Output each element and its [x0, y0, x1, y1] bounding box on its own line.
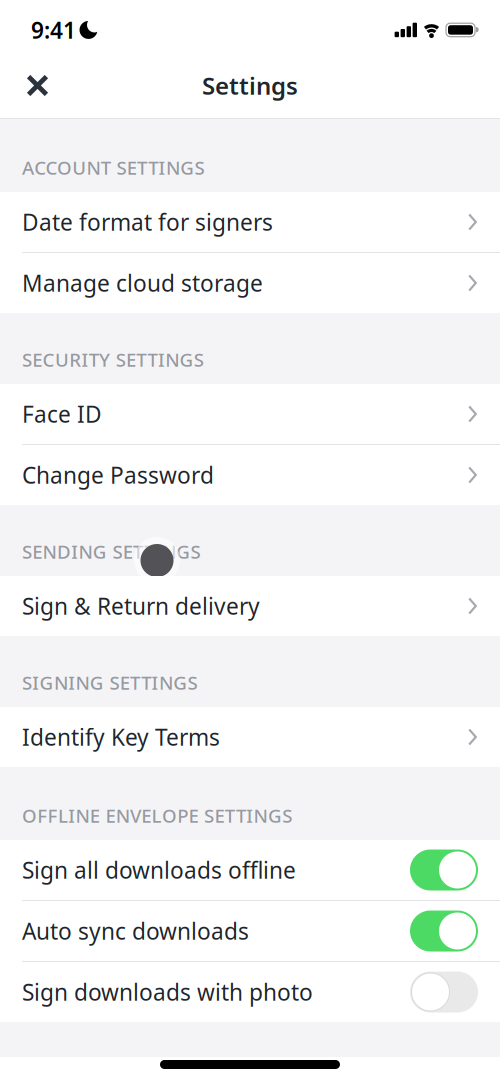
staticText: Face ID [22, 399, 102, 429]
staticText: SENDING SETTINGS [22, 539, 200, 564]
staticText: SIGNING SETTINGS [22, 670, 197, 695]
button[interactable]: Sign downloads with photo [0, 962, 500, 1022]
button[interactable]: Auto sync downloads [0, 901, 500, 961]
staticText: Manage cloud storage [22, 268, 263, 298]
staticText: ACCOUNT SETTINGS [22, 155, 204, 180]
staticText: Sign & Return delivery [22, 591, 260, 621]
staticText: Auto sync downloads [22, 916, 249, 946]
staticText: OFFLINE ENVELOPE SETTINGS [22, 803, 292, 828]
button[interactable]: Sign & Return delivery [0, 576, 500, 636]
staticText: Sign all downloads offline [22, 855, 296, 885]
button[interactable]: Sign all downloads offline [0, 840, 500, 900]
staticText: Sign downloads with photo [22, 977, 313, 1007]
staticText: 9:41 [31, 15, 76, 45]
button[interactable]: Change Password [0, 445, 500, 505]
button[interactable]: Date format for signers [0, 192, 500, 252]
button[interactable]: Close [0, 68, 49, 97]
staticText: Change Password [22, 460, 214, 490]
staticText: SECURITY SETTINGS [22, 347, 204, 372]
button[interactable]: Identify Key Terms [0, 707, 500, 767]
button[interactable]: Face ID [0, 384, 500, 444]
staticText: Identify Key Terms [22, 722, 220, 752]
staticText: Settings [202, 70, 298, 101]
staticText: Date format for signers [22, 207, 273, 237]
button[interactable]: Manage cloud storage [0, 253, 500, 313]
